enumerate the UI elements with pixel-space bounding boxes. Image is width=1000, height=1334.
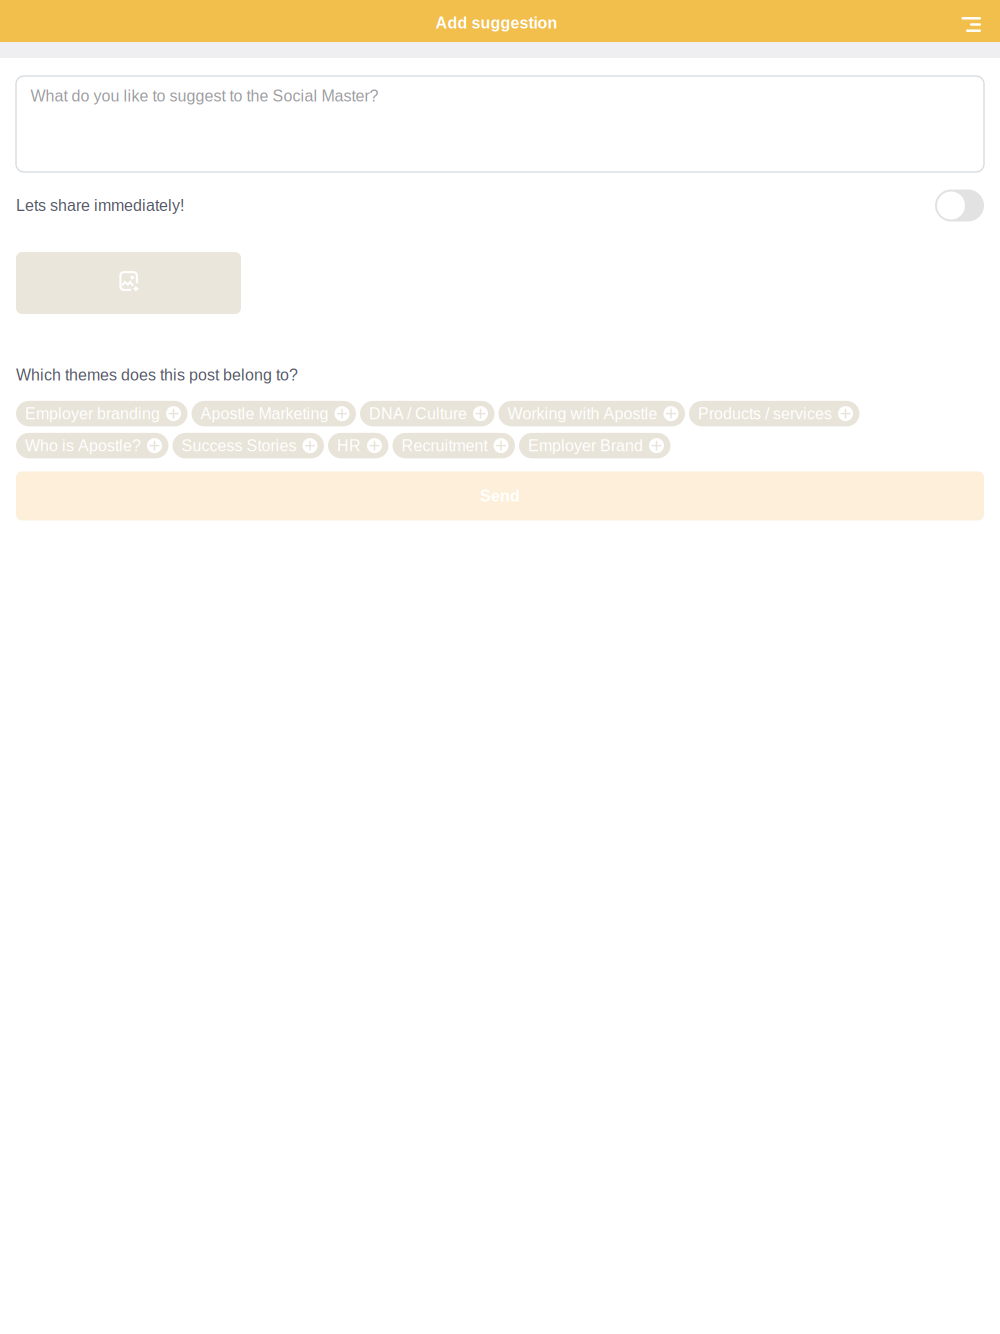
button[interactable]: HR (328, 433, 388, 458)
staticText: Recruitment (401, 437, 487, 455)
button[interactable]: What do you like to suggest to the Socia… (16, 76, 984, 172)
staticText: Who is Apostle? (25, 437, 141, 455)
staticText: Employer branding (25, 405, 160, 423)
button[interactable]: Send (16, 471, 984, 520)
button[interactable]: Success Stories (172, 433, 324, 458)
button[interactable]: Menu (961, 0, 1000, 42)
staticText: What do you like to suggest to the Socia… (30, 87, 378, 105)
button[interactable]: Products / services (689, 401, 859, 426)
staticText: Employer Brand (528, 437, 643, 455)
button[interactable]: Employer Brand (519, 433, 670, 458)
staticText: DNA / Culture (369, 405, 467, 423)
staticText: Products / services (698, 405, 832, 423)
staticText: Add suggestion (435, 14, 557, 32)
staticText: Working with Apostle (507, 405, 657, 423)
button[interactable]: Employer branding (16, 401, 187, 426)
button[interactable]: Working with Apostle (498, 401, 685, 426)
button[interactable]: Recruitment (392, 433, 515, 458)
staticText: Send (480, 487, 520, 505)
staticText: Lets share immediately! (16, 197, 184, 214)
staticText: Apostle Marketing (200, 405, 328, 423)
button[interactable]: Lets share immediately (935, 189, 984, 221)
button[interactable]: Who is Apostle? (16, 433, 168, 458)
staticText: Which themes does this post belong to? (16, 366, 298, 384)
button[interactable]: Add image (16, 252, 241, 314)
staticText: HR (337, 437, 361, 455)
staticText: Success Stories (181, 437, 296, 455)
button[interactable]: Apostle Marketing (191, 401, 356, 426)
button[interactable]: DNA / Culture (360, 401, 494, 426)
